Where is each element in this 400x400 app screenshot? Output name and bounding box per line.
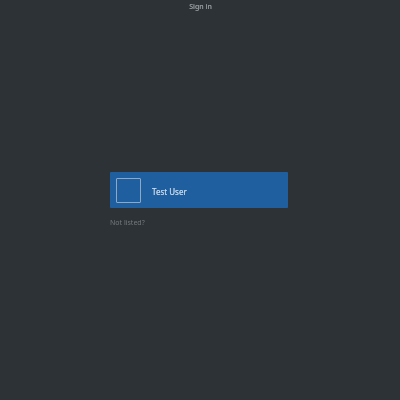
button[interactable]: Not listed?	[106, 215, 149, 231]
other: Provider icon	[116, 178, 141, 203]
staticText: Test User	[152, 186, 187, 197]
button[interactable]: Provider icon	[110, 172, 288, 208]
staticText: Not listed?	[110, 218, 145, 228]
staticText: Sign in	[189, 2, 212, 12]
